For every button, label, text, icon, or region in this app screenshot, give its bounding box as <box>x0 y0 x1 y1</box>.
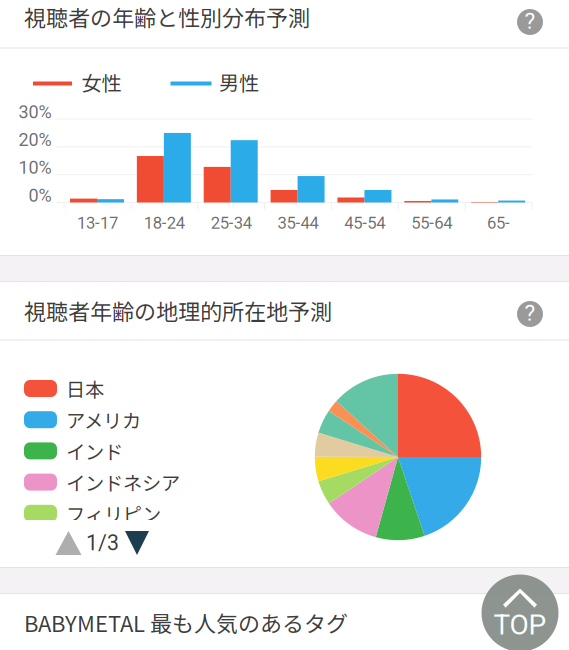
button[interactable]: トップへ戻る <box>481 574 558 650</box>
button[interactable]: ヘルプ <box>508 292 552 336</box>
button[interactable]: アメリカ <box>24 407 224 433</box>
button[interactable]: 日本 <box>24 375 224 401</box>
button[interactable]: フィリピン <box>24 500 224 526</box>
staticText: 35-44 <box>277 213 318 233</box>
button[interactable]: インド <box>24 438 224 464</box>
button[interactable]: 前のページ <box>47 523 89 563</box>
button[interactable]: インドネシア <box>24 469 224 495</box>
staticText: 1/3 <box>86 530 119 555</box>
staticText: 25-34 <box>211 213 252 233</box>
staticText: 日本 <box>66 375 104 402</box>
staticText: インド <box>66 437 123 465</box>
staticText: 65- <box>487 213 510 233</box>
staticText: ? <box>524 300 535 326</box>
staticText: インドネシア <box>66 468 180 496</box>
staticText: 18-24 <box>144 213 185 233</box>
staticText: ? <box>524 8 535 34</box>
staticText: フィリピン <box>66 499 161 527</box>
staticText: 13-17 <box>77 213 118 233</box>
staticText: 0% <box>28 185 51 206</box>
staticText: 20% <box>18 129 51 150</box>
button[interactable]: ヘルプ <box>508 0 552 44</box>
staticText: 視聴者の年齢と性別分布予測 <box>24 1 310 33</box>
staticText: BABYMETAL 最も人気のあるタグ <box>24 607 348 638</box>
staticText: 女性 <box>81 67 121 97</box>
button[interactable]: 次のページ <box>116 523 158 563</box>
staticText: 55-64 <box>411 213 452 233</box>
staticText: 30% <box>18 101 51 123</box>
staticText: 視聴者年齢の地理的所在地予測 <box>24 295 332 326</box>
staticText: 男性 <box>219 67 259 97</box>
staticText: TOP <box>493 609 546 641</box>
staticText: 45-54 <box>344 213 385 233</box>
staticText: アメリカ <box>66 406 141 434</box>
staticText: 10% <box>18 157 51 178</box>
